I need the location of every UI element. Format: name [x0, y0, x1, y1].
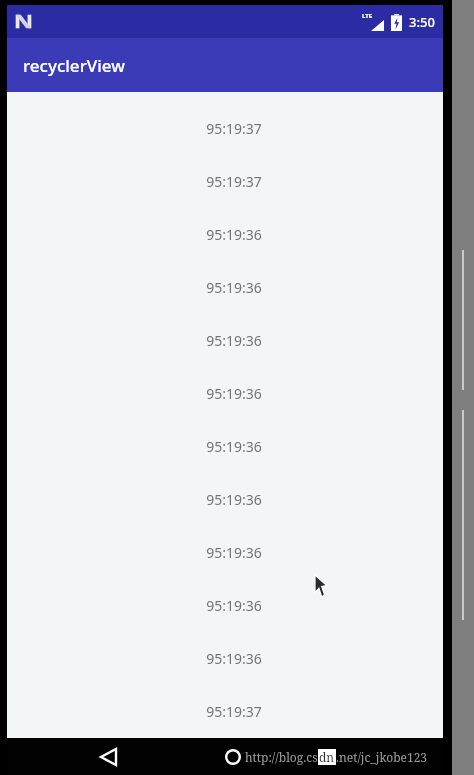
- button[interactable]: 95:19:36: [7, 437, 443, 490]
- button[interactable]: 95:19:36: [7, 384, 443, 437]
- staticText: 95:19:36: [206, 331, 262, 350]
- button[interactable]: 95:19:37: [7, 172, 443, 225]
- button[interactable]: 95:19:36: [7, 649, 443, 702]
- staticText: http://blog.cs: [245, 749, 318, 765]
- staticText: 3:50: [409, 13, 435, 31]
- staticText: 95:19:36: [206, 437, 262, 456]
- button[interactable]: 95:19:37: [7, 119, 443, 172]
- staticText: 95:19:36: [206, 278, 262, 297]
- button[interactable]: Back: [85, 738, 131, 775]
- button[interactable]: 95:19:36: [7, 225, 443, 278]
- staticText: 95:19:36: [206, 649, 262, 668]
- staticText: 95:19:36: [206, 225, 262, 244]
- staticText: 95:19:37: [206, 172, 262, 191]
- button[interactable]: 95:19:37: [7, 702, 443, 755]
- staticText: 95:19:37: [206, 119, 262, 138]
- button[interactable]: 95:19:36: [7, 490, 443, 543]
- button[interactable]: Home: [210, 738, 256, 775]
- button[interactable]: 95:19:36: [7, 278, 443, 331]
- staticText: 95:19:36: [206, 596, 262, 615]
- staticText: LTE: [362, 12, 373, 20]
- staticText: 95:19:36: [206, 490, 262, 509]
- button[interactable]: 95:19:36: [7, 331, 443, 384]
- button[interactable]: 95:19:36: [7, 596, 443, 649]
- staticText: 95:19:37: [206, 702, 262, 721]
- staticText: 95:19:36: [206, 384, 262, 403]
- staticText: .net/jc_jkobe123: [336, 749, 428, 765]
- staticText: dn: [319, 749, 335, 765]
- button[interactable]: 95:19:36: [7, 543, 443, 596]
- staticText: recyclerView: [23, 54, 125, 77]
- staticText: 95:19:36: [206, 543, 262, 562]
